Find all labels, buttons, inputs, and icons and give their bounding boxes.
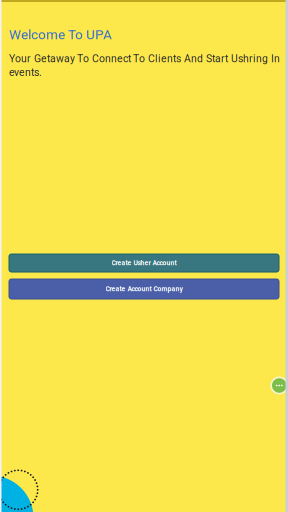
button[interactable]: Create Usher Account [9,254,279,272]
staticText: Create Account Company [105,285,182,293]
button[interactable]: More options [270,376,288,394]
staticText: Welcome To UPA [9,27,112,43]
staticText: Create Usher Account [111,259,176,267]
staticText: Your Getaway To Connect To Clients And S… [9,53,280,78]
button[interactable]: Create Account Company [9,279,279,299]
